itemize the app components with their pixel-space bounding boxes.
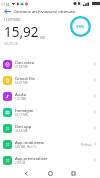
button[interactable]: App inutilizzate bbox=[0, 136, 100, 152]
staticText: 64,41 MB bbox=[15, 81, 28, 85]
staticText: Immagini bbox=[15, 108, 34, 113]
staticText: GB bbox=[40, 35, 45, 40]
button[interactable]: App preinstallate bbox=[0, 152, 100, 168]
staticText: Dati video bbox=[15, 60, 35, 65]
staticText: 31,06 MB bbox=[15, 65, 28, 69]
button[interactable]: Home bbox=[45, 168, 56, 178]
button[interactable]: Immagini bbox=[0, 104, 100, 120]
staticText: App preinstallate bbox=[15, 156, 48, 161]
staticText: 99% bbox=[76, 24, 85, 30]
button[interactable]: Dati app bbox=[0, 120, 100, 136]
staticText: Dati app bbox=[15, 124, 32, 129]
staticText: 2,89 GB bbox=[15, 161, 26, 165]
staticText: 66,73 MB bbox=[15, 113, 28, 117]
staticText: 17:54 bbox=[1, 2, 10, 6]
button[interactable]: Audio bbox=[0, 88, 100, 104]
staticText: App inutilizzate bbox=[15, 140, 45, 145]
button[interactable]: Back bbox=[2, 6, 13, 17]
button[interactable]: Back bbox=[21, 168, 32, 178]
staticText: Pulisci bbox=[81, 142, 92, 147]
staticText: 1,07 MB bbox=[15, 97, 26, 101]
staticText: 15,92 bbox=[4, 23, 39, 41]
staticText: 500 MB, Non Ti... bbox=[15, 145, 38, 149]
staticText: Audio bbox=[15, 92, 27, 97]
staticText: Gestione archiviazione ottenuta bbox=[14, 9, 75, 14]
button[interactable]: Grandi file bbox=[0, 72, 100, 88]
staticText: /64,00 GB bbox=[4, 42, 18, 46]
button[interactable]: Dati video bbox=[0, 56, 100, 72]
staticText: TELEFONO bbox=[4, 18, 21, 22]
staticText: 36,66 MB bbox=[15, 129, 28, 133]
staticText: Grandi file bbox=[15, 76, 35, 81]
button[interactable]: Recents bbox=[68, 168, 79, 178]
